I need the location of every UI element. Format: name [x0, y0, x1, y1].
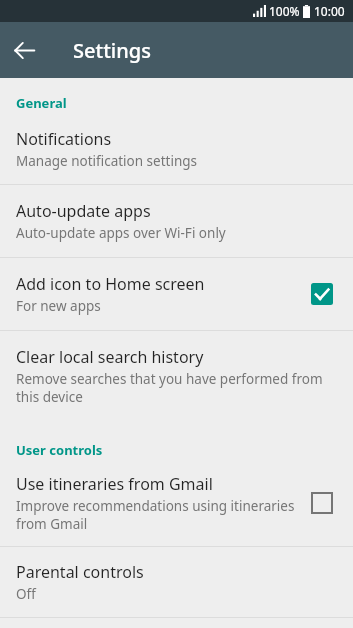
staticText: For new apps [16, 297, 101, 315]
staticText: Add icon to Home screen [16, 273, 205, 295]
button[interactable]: Use itineraries from Gmail [0, 459, 353, 546]
button[interactable]: Auto-update apps [0, 185, 353, 257]
staticText: Auto-update apps [16, 200, 151, 222]
staticText: Auto-update apps over Wi-Fi only [16, 224, 226, 242]
staticText: Parental controls [16, 561, 144, 583]
staticText: 10:00 [314, 3, 345, 19]
staticText: Clear local search history [16, 346, 204, 368]
button[interactable]: Clear local search history [0, 331, 353, 419]
button[interactable]: Back [0, 26, 48, 74]
button[interactable]: Parental controls [0, 547, 353, 617]
staticText: Improve recommendations using itinerarie… [16, 497, 295, 533]
staticText: General [16, 94, 67, 112]
staticText: Remove searches that you have performed … [16, 370, 333, 406]
staticText: Settings [73, 37, 151, 64]
staticText: Notifications [16, 128, 112, 150]
button[interactable]: Notifications [0, 112, 353, 184]
button[interactable]: Add icon to Home screen [0, 258, 353, 330]
staticText: Use itineraries from Gmail [16, 473, 213, 495]
staticText: 100% [269, 3, 300, 19]
staticText: Off [16, 585, 36, 603]
staticText: User controls [16, 441, 103, 459]
staticText: Manage notification settings [16, 152, 198, 170]
